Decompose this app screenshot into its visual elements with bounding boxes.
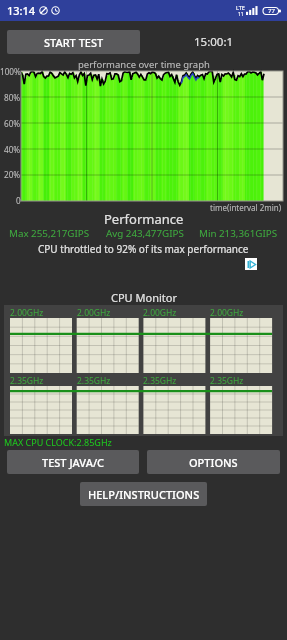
staticText: OPTIONS bbox=[189, 455, 238, 470]
staticText: Performance bbox=[104, 210, 184, 228]
button[interactable]: OPTIONS bbox=[147, 450, 280, 474]
staticText: 20% bbox=[4, 169, 21, 180]
staticText: Avg 243,477GIPS bbox=[106, 227, 184, 240]
staticText: LTE bbox=[236, 4, 245, 11]
staticText: MAX CPU CLOCK:2.85GHz bbox=[4, 436, 112, 448]
staticText: 2.00GHz bbox=[77, 307, 111, 319]
button[interactable]: START TEST bbox=[7, 30, 140, 54]
staticText: 60% bbox=[4, 118, 21, 129]
staticText: 13:14 bbox=[7, 3, 36, 18]
staticText: 2.35GHz bbox=[143, 375, 177, 387]
staticText: 80% bbox=[4, 92, 21, 103]
staticText: 2.00GHz bbox=[210, 307, 244, 319]
staticText: performance over time graph bbox=[78, 58, 210, 71]
staticText: 77 bbox=[268, 7, 275, 15]
staticText: 2.00GHz bbox=[10, 307, 44, 319]
staticText: CPU Monitor bbox=[111, 290, 177, 305]
staticText: 100% bbox=[0, 66, 21, 77]
button[interactable]: HELP/INSTRUCTIONS bbox=[80, 482, 207, 506]
staticText: 2.35GHz bbox=[210, 375, 244, 387]
staticText: time(interval 2min) bbox=[210, 202, 282, 213]
staticText: CPU throttled to 92% of its max performa… bbox=[38, 242, 249, 256]
staticText: 0 bbox=[16, 195, 21, 206]
staticText: 11 bbox=[238, 11, 244, 18]
staticText: 2.35GHz bbox=[10, 375, 44, 387]
staticText: 40% bbox=[4, 144, 21, 155]
staticText: 2.00GHz bbox=[143, 307, 177, 319]
staticText: TEST JAVA/C bbox=[42, 455, 105, 470]
staticText: HELP/INSTRUCTIONS bbox=[88, 487, 200, 502]
staticText: Max 255,217GIPS bbox=[9, 227, 90, 240]
button[interactable]: TEST JAVA/C bbox=[7, 450, 139, 474]
staticText: 2.35GHz bbox=[77, 375, 111, 387]
staticText: Min 213,361GIPS bbox=[199, 227, 278, 240]
staticText: 15:00:1 bbox=[194, 34, 234, 50]
button[interactable]: Ad choices bbox=[245, 258, 257, 270]
staticText: START TEST bbox=[44, 35, 104, 50]
